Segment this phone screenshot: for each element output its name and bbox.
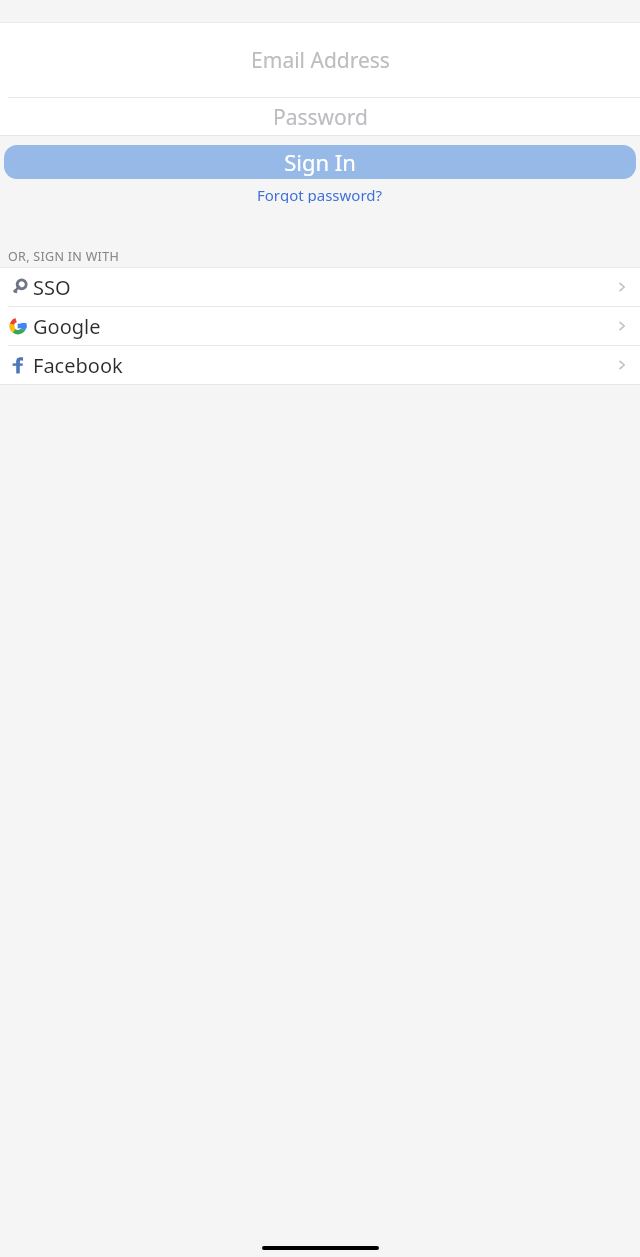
- staticText: Sign In: [284, 147, 356, 177]
- staticText: SSO: [33, 274, 71, 301]
- button[interactable]: Forgot password?: [251, 183, 389, 205]
- staticText: Google: [33, 313, 101, 340]
- staticText: Forgot password?: [257, 185, 383, 203]
- button[interactable]: Email Address: [0, 22, 640, 98]
- button[interactable]: Facebook: [0, 346, 640, 384]
- button[interactable]: Google: [0, 307, 640, 345]
- staticText: Password: [273, 103, 368, 132]
- button[interactable]: Password: [0, 98, 640, 136]
- button[interactable]: SSO: [0, 268, 640, 306]
- staticText: Email Address: [251, 46, 390, 75]
- staticText: OR, SIGN IN WITH: [8, 248, 119, 265]
- staticText: Facebook: [33, 352, 123, 379]
- button[interactable]: Sign In: [4, 145, 636, 179]
